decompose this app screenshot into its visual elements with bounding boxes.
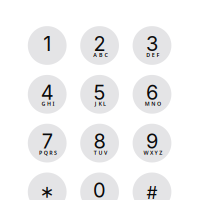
button[interactable]: 9 WXYZ: [133, 124, 171, 162]
staticText: #: [146, 182, 157, 200]
staticText: 2: [94, 32, 106, 56]
staticText: 9: [146, 129, 158, 153]
staticText: 7: [42, 129, 53, 153]
button[interactable]: 7 PQRS: [28, 124, 67, 162]
button[interactable]: #: [133, 172, 171, 200]
button[interactable]: ∗: [28, 172, 67, 200]
staticText: TUV: [94, 149, 107, 156]
button[interactable]: 8 TUV: [80, 124, 119, 162]
staticText: ∗: [40, 182, 55, 200]
staticText: 1: [43, 32, 51, 56]
button[interactable]: 3 DEF: [133, 26, 171, 65]
staticText: JKL: [95, 100, 106, 107]
button[interactable]: 4 GHI: [28, 75, 67, 114]
button[interactable]: 0: [80, 172, 119, 200]
staticText: PQRS: [39, 149, 57, 156]
staticText: MNO: [145, 100, 161, 107]
staticText: 3: [146, 32, 158, 56]
staticText: 8: [94, 129, 106, 153]
staticText: GHI: [41, 100, 55, 107]
staticText: 6: [146, 80, 158, 105]
button[interactable]: 1: [28, 26, 67, 65]
staticText: ABC: [93, 51, 107, 59]
button[interactable]: 2 ABC: [80, 26, 119, 65]
staticText: 0: [93, 178, 106, 200]
button[interactable]: 6 MNO: [133, 75, 171, 114]
staticText: 4: [41, 80, 54, 105]
staticText: 5: [94, 80, 106, 105]
staticText: WXYZ: [143, 149, 162, 156]
staticText: DEF: [146, 51, 159, 59]
button[interactable]: 5 JKL: [80, 75, 119, 114]
